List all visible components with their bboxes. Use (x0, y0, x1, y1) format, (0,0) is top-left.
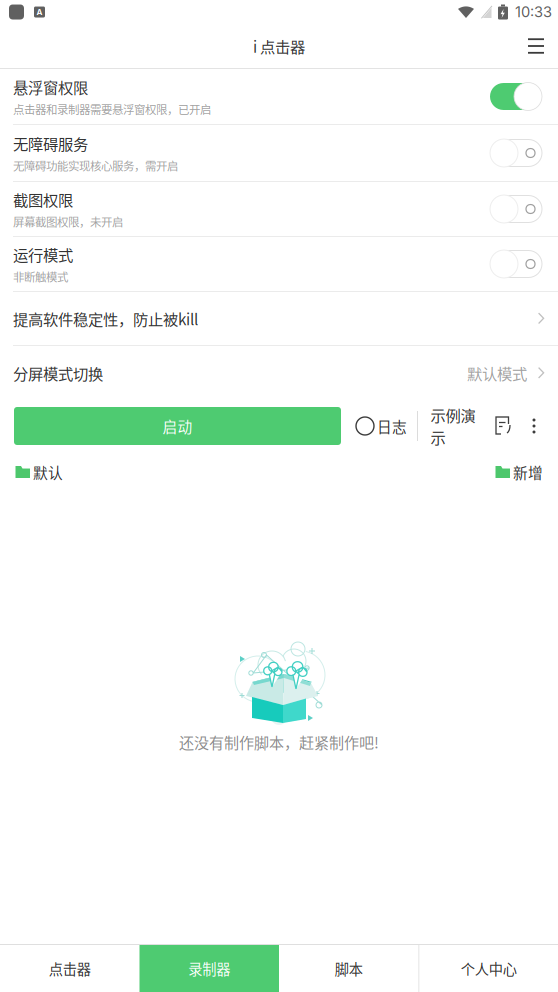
button[interactable]: 示例演示 (418, 404, 488, 448)
staticText: 新增 (513, 461, 543, 483)
button[interactable]: 默认 (15, 456, 63, 488)
button[interactable]: 脚本 (279, 945, 418, 992)
staticText: A (36, 7, 42, 17)
button[interactable]: 日志 (341, 404, 417, 448)
staticText: 录制器 (188, 958, 230, 979)
button[interactable]: 截图权限 (0, 182, 558, 237)
staticText: 默认模式 (467, 362, 527, 384)
staticText: 默认 (33, 461, 63, 483)
button[interactable]: 运行模式 (0, 237, 558, 292)
staticText: 点击器和录制器需要悬浮窗权限，已开启 (13, 101, 211, 117)
staticText: 启动 (162, 415, 192, 437)
staticText: 无障碍功能实现核心服务，需开启 (13, 157, 178, 174)
staticText: 个人中心 (461, 958, 517, 979)
staticText: 点击器 (49, 958, 91, 979)
staticText: 非断触模式 (13, 268, 68, 285)
button[interactable]: 个人中心 (418, 945, 558, 992)
button[interactable]: More (520, 404, 548, 448)
button[interactable]: Import script (488, 404, 520, 448)
staticText: 提高软件稳定性，防止被kill (13, 307, 198, 330)
staticText: 示例演示 (430, 404, 475, 448)
staticText: 脚本 (335, 958, 363, 979)
button[interactable]: 提高软件稳定性，防止被kill (0, 292, 558, 346)
staticText: 日志 (377, 415, 407, 437)
staticText: 悬浮窗权限 (13, 76, 88, 98)
button[interactable]: 分屏模式切换 (0, 346, 558, 400)
button[interactable]: 新增 (495, 456, 543, 488)
button[interactable]: 启动 (14, 407, 341, 445)
button[interactable]: 无障碍服务 (0, 125, 558, 182)
staticText: 还没有制作脚本，赶紧制作吧! (179, 731, 379, 753)
staticText: 运行模式 (13, 243, 73, 265)
staticText: 分屏模式切换 (13, 362, 103, 384)
button[interactable]: 悬浮窗权限 (0, 69, 558, 125)
button[interactable]: 点击器 (0, 945, 139, 992)
button[interactable]: Menu (514, 24, 558, 68)
staticText: i 点击器 (253, 35, 305, 57)
staticText: 屏幕截图权限，未开启 (13, 213, 123, 230)
staticText: 无障碍服务 (13, 132, 88, 154)
button[interactable]: 录制器 (139, 945, 279, 992)
staticText: 10:33 (515, 3, 552, 21)
staticText: 截图权限 (13, 188, 73, 210)
